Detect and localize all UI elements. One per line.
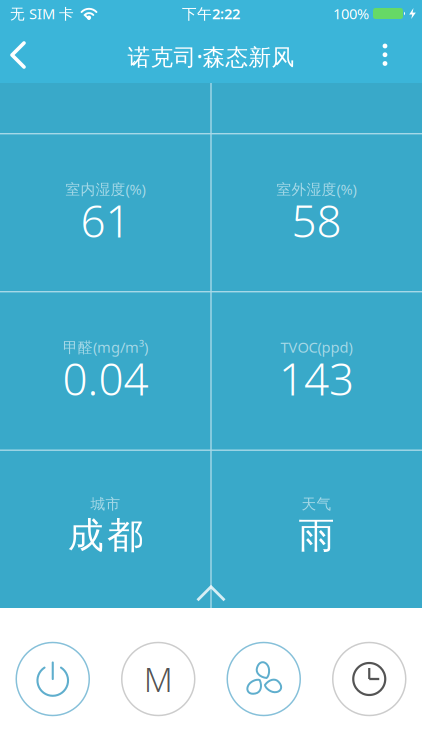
staticText: 下午2:22 bbox=[182, 4, 240, 23]
staticText: 58 bbox=[291, 191, 341, 250]
staticText: 0.04 bbox=[62, 349, 148, 408]
button[interactable]: Timer bbox=[333, 642, 406, 715]
staticText: 诺克司·森态新风 bbox=[127, 41, 294, 71]
staticText: 143 bbox=[279, 349, 354, 408]
staticText: 100% bbox=[333, 4, 369, 23]
button[interactable]: Mode bbox=[122, 642, 195, 715]
staticText: TVOC(ppd) bbox=[280, 337, 352, 357]
staticText: M bbox=[144, 657, 173, 701]
staticText: 室内湿度(%) bbox=[65, 179, 145, 199]
staticText: 室外湿度(%) bbox=[276, 179, 356, 199]
staticText: 城市 bbox=[90, 495, 120, 513]
staticText: 甲醛(mg/m³) bbox=[63, 337, 148, 357]
staticText: 成都 bbox=[68, 513, 143, 558]
button[interactable]: Fan speed bbox=[227, 642, 300, 715]
button[interactable]: Back bbox=[8, 40, 38, 70]
staticText: 天气 bbox=[301, 495, 331, 513]
staticText: 无 SIM 卡 bbox=[10, 4, 74, 23]
button[interactable]: Expand bbox=[196, 585, 226, 602]
button[interactable]: Power bbox=[16, 642, 89, 715]
button[interactable]: More bbox=[381, 42, 422, 68]
staticText: 61 bbox=[80, 191, 130, 250]
staticText: 雨 bbox=[298, 513, 334, 558]
